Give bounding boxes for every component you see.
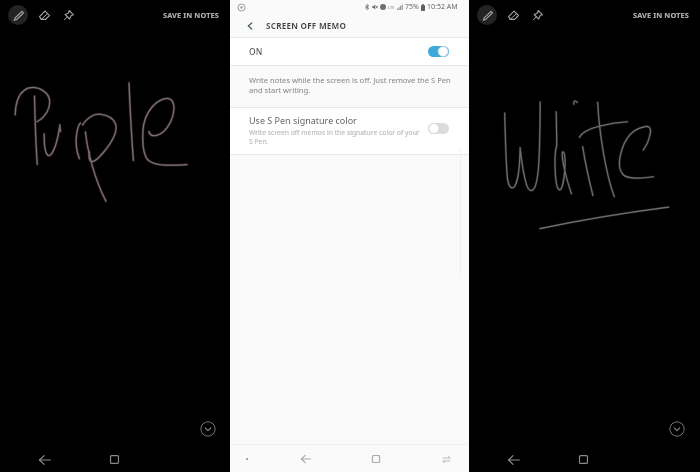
staticText: SAVE IN NOTES [633, 10, 689, 20]
button[interactable]: SAVE IN NOTES [161, 5, 221, 25]
button[interactable]: Eraser [503, 5, 523, 25]
button[interactable]: Back [34, 449, 55, 470]
staticText: 75% [405, 2, 419, 12]
button[interactable]: Recents [104, 449, 125, 470]
button[interactable]: Collapse [200, 421, 216, 437]
button[interactable]: Eraser [34, 5, 54, 25]
button[interactable]: Pen [8, 5, 28, 25]
button[interactable]: Back [503, 449, 524, 470]
button[interactable]: Back [297, 450, 315, 468]
button[interactable]: SAVE IN NOTES [631, 5, 691, 25]
staticText: SCREEN OFF MEMO [266, 20, 347, 31]
button[interactable]: Recents [573, 449, 594, 470]
button[interactable]: Back [241, 17, 259, 35]
button[interactable]: Pen [477, 5, 497, 25]
button[interactable]: Menu [239, 451, 255, 467]
button[interactable]: Switch apps [437, 450, 455, 468]
staticText: Write screen off memos in the signature … [249, 128, 421, 146]
button[interactable]: Recents [367, 450, 385, 468]
staticText: Write notes while the screen is off. Jus… [249, 75, 455, 95]
button[interactable]: ON [230, 38, 469, 65]
staticText: 10:52 AM [427, 2, 458, 12]
staticText: LTE [388, 5, 395, 10]
staticText: Use S Pen signature color [249, 114, 357, 126]
button[interactable]: Use S Pen signature color [230, 108, 469, 154]
button[interactable]: Collapse [669, 421, 685, 437]
button[interactable]: Toggle on [428, 46, 449, 57]
button[interactable]: Toggle off [428, 123, 449, 134]
staticText: SAVE IN NOTES [163, 10, 219, 20]
staticText: ON [249, 46, 263, 58]
button[interactable]: Pin [528, 5, 548, 25]
button[interactable]: Pin [59, 5, 79, 25]
